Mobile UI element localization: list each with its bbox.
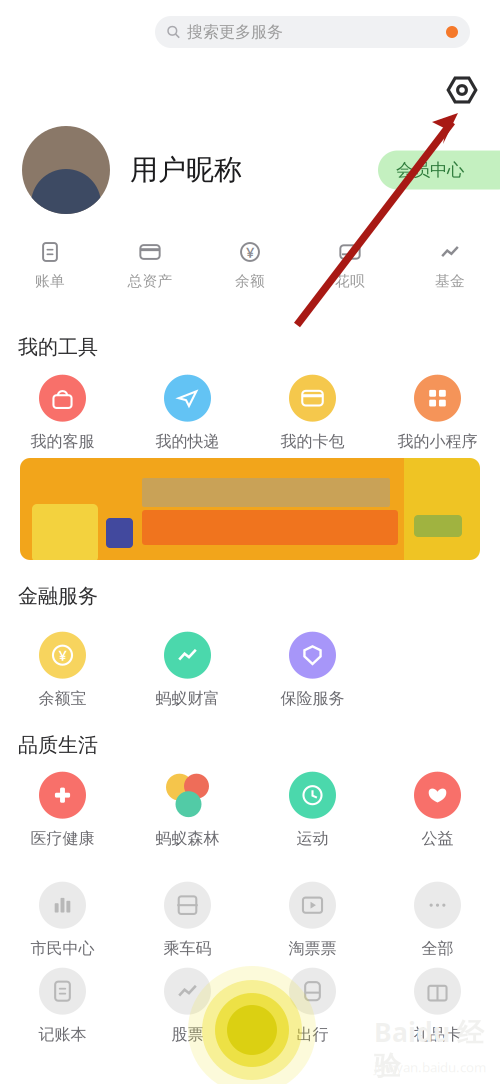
- button[interactable]: 市民中心: [0, 882, 125, 957]
- button[interactable]: ¥: [0, 632, 125, 707]
- button[interactable]: 我的小程序: [375, 375, 500, 450]
- staticText: 我的快递: [155, 432, 219, 451]
- staticText: 医疗健康: [30, 829, 94, 848]
- staticText: 公益: [421, 829, 453, 848]
- staticText: jingyan.baidu.com: [374, 1058, 486, 1076]
- staticText: 股票: [171, 1025, 203, 1044]
- staticText: 余额: [235, 272, 265, 290]
- button[interactable]: 医疗健康: [0, 772, 125, 847]
- button[interactable]: 我的客服: [0, 375, 125, 450]
- button[interactable]: ¥: [200, 240, 300, 290]
- staticText: 我的卡包: [280, 432, 344, 451]
- button[interactable]: 运动: [250, 772, 375, 847]
- staticText: 淘票票: [288, 939, 336, 958]
- staticText: 账单: [35, 272, 65, 290]
- staticText: 乘车码: [163, 939, 211, 958]
- staticText: 礼品卡: [413, 1025, 461, 1044]
- button[interactable]: Profile photo: [22, 126, 110, 214]
- button[interactable]: 用户昵称: [130, 153, 242, 187]
- button[interactable]: 我的快递: [125, 375, 250, 450]
- staticText: Baidu 经验: [374, 1014, 484, 1082]
- staticText: 市民中心: [30, 939, 94, 958]
- staticText: ¥: [246, 242, 254, 262]
- staticText: 金融服务: [18, 584, 98, 608]
- button[interactable]: 全部: [375, 882, 500, 957]
- staticText: 搜索更多服务: [187, 22, 283, 42]
- button[interactable]: 公益: [375, 772, 500, 847]
- staticText: 花呗: [335, 272, 365, 290]
- button[interactable]: 会员中心: [378, 150, 500, 189]
- button[interactable]: 股票: [125, 968, 250, 1043]
- staticText: 蚂蚁财富: [155, 689, 219, 708]
- staticText: 总资产: [127, 272, 172, 290]
- button[interactable]: [0, 458, 500, 560]
- button[interactable]: 保险服务: [250, 632, 375, 707]
- staticText: ¥: [58, 645, 66, 665]
- button[interactable]: 乘车码: [125, 882, 250, 957]
- button[interactable]: 搜索更多服务: [155, 16, 470, 48]
- staticText: 出行: [296, 1025, 328, 1044]
- button[interactable]: 礼品卡: [375, 968, 500, 1043]
- button[interactable]: 记账本: [0, 968, 125, 1043]
- staticText: 我的工具: [18, 335, 98, 359]
- button[interactable]: 总资产: [100, 240, 200, 290]
- staticText: 保险服务: [280, 689, 344, 708]
- button[interactable]: 出行: [250, 968, 375, 1043]
- staticText: 记账本: [38, 1025, 86, 1044]
- button[interactable]: 账单: [0, 240, 100, 290]
- button[interactable]: 花呗: [300, 240, 400, 290]
- staticText: 运动: [296, 829, 328, 848]
- button[interactable]: 我的卡包: [250, 375, 375, 450]
- staticText: 基金: [435, 272, 465, 290]
- staticText: 我的小程序: [397, 432, 477, 451]
- staticText: 蚂蚁森林: [155, 829, 219, 848]
- staticText: 用户昵称: [130, 153, 242, 187]
- staticText: 品质生活: [18, 733, 98, 757]
- button[interactable]: 蚂蚁森林: [125, 772, 250, 847]
- staticText: 我的客服: [30, 432, 94, 451]
- staticText: 全部: [421, 939, 453, 958]
- staticText: 余额宝: [38, 689, 86, 708]
- button[interactable]: Settings: [446, 74, 478, 106]
- button[interactable]: 基金: [400, 240, 500, 290]
- button[interactable]: 淘票票: [250, 882, 375, 957]
- button[interactable]: 蚂蚁财富: [125, 632, 250, 707]
- staticText: 会员中心: [396, 159, 464, 181]
